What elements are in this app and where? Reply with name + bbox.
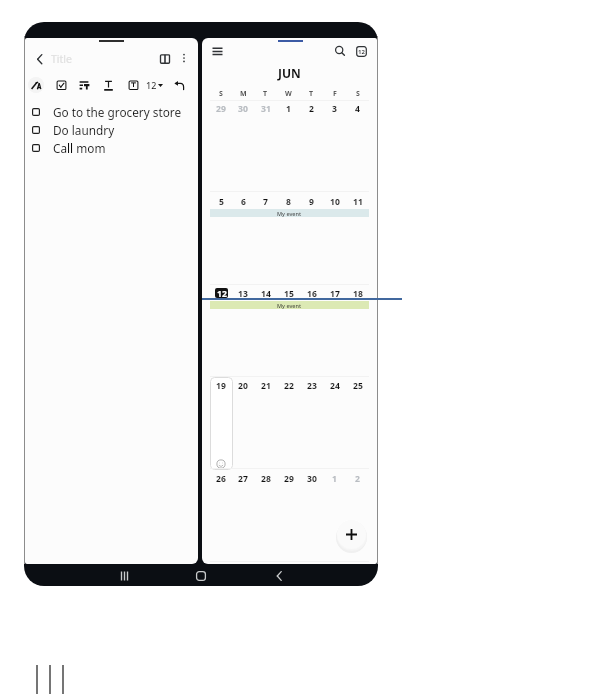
- button[interactable]: 12: [210, 288, 232, 298]
- staticText: JUN: [278, 65, 301, 81]
- button[interactable]: 15: [277, 288, 300, 298]
- button[interactable]: Recents: [115, 567, 133, 585]
- staticText: 9: [309, 196, 314, 206]
- button[interactable]: Back: [31, 50, 47, 66]
- staticText: F: [333, 89, 337, 99]
- staticText: 13: [238, 288, 248, 298]
- button[interactable]: 10: [323, 196, 346, 206]
- staticText: Call mom: [53, 140, 106, 156]
- button[interactable]: 4: [346, 103, 369, 113]
- button[interactable]: Undo: [171, 77, 187, 93]
- staticText: 31: [261, 103, 271, 113]
- staticText: 1: [332, 473, 337, 483]
- staticText: 7: [263, 196, 268, 206]
- staticText: 1: [286, 103, 291, 113]
- staticText: 4: [355, 103, 360, 113]
- staticText: M: [240, 89, 247, 99]
- staticText: 21: [261, 380, 271, 390]
- button[interactable]: 28: [254, 473, 277, 483]
- staticText: Go to the grocery store: [53, 104, 182, 120]
- button[interactable]: 7: [254, 196, 277, 206]
- staticText: 29: [216, 103, 226, 113]
- button[interactable]: Checklist: [53, 77, 69, 93]
- staticText: 30: [238, 103, 248, 113]
- button[interactable]: 6: [232, 196, 254, 206]
- button[interactable]: Menu: [209, 43, 225, 59]
- staticText: 23: [307, 380, 317, 390]
- button[interactable]: Home: [192, 567, 210, 585]
- button[interactable]: 14: [254, 288, 277, 298]
- button[interactable]: 26: [210, 473, 232, 483]
- button[interactable]: 19: [210, 380, 232, 390]
- staticText: 22: [284, 380, 294, 390]
- button[interactable]: 2: [300, 103, 323, 113]
- button[interactable]: 11: [346, 196, 369, 206]
- button[interactable]: 25: [346, 380, 369, 390]
- staticText: 14: [261, 288, 271, 298]
- staticText: T: [309, 89, 314, 99]
- button[interactable]: 1: [277, 103, 300, 113]
- button[interactable]: 20: [232, 380, 254, 390]
- staticText: 12: [217, 288, 227, 298]
- button[interactable]: 12: [146, 79, 163, 91]
- staticText: 25: [353, 380, 363, 390]
- staticText: 19: [216, 380, 226, 390]
- staticText: 2: [355, 473, 360, 483]
- button[interactable]: Insert: [125, 77, 141, 93]
- button[interactable]: Do laundry: [32, 121, 197, 139]
- button[interactable]: Go to the grocery store: [32, 103, 197, 121]
- button[interactable]: 13: [232, 288, 254, 298]
- staticText: 28: [261, 473, 271, 483]
- button[interactable]: 22: [277, 380, 300, 390]
- button[interactable]: Text style: [100, 77, 116, 93]
- button[interactable]: 17: [323, 288, 346, 298]
- staticText: 11: [353, 196, 363, 206]
- button[interactable]: 16: [300, 288, 323, 298]
- staticText: 6: [241, 196, 246, 206]
- staticText: 3: [332, 103, 337, 113]
- staticText: My event: [277, 302, 302, 309]
- button[interactable]: 27: [232, 473, 254, 483]
- staticText: 12: [358, 48, 365, 56]
- button[interactable]: 30: [300, 473, 323, 483]
- button[interactable]: 5: [210, 196, 232, 206]
- staticText: 20: [238, 380, 248, 390]
- button[interactable]: 2: [346, 473, 369, 483]
- button[interactable]: 31: [254, 103, 277, 113]
- staticText: 26: [216, 473, 226, 483]
- button[interactable]: Call mom: [32, 139, 197, 157]
- button[interactable]: 29: [277, 473, 300, 483]
- button[interactable]: 9: [300, 196, 323, 206]
- button[interactable]: More options: [177, 50, 191, 64]
- button[interactable]: Today: [353, 43, 369, 59]
- button[interactable]: 8: [277, 196, 300, 206]
- button[interactable]: Align: [76, 77, 92, 93]
- staticText: 2: [309, 103, 314, 113]
- button[interactable]: Add event: [337, 520, 366, 549]
- button[interactable]: 3: [323, 103, 346, 113]
- staticText: 30: [307, 473, 317, 483]
- button[interactable]: View mode: [157, 50, 173, 66]
- staticText: My event: [277, 210, 302, 217]
- staticText: 12: [146, 79, 157, 91]
- button[interactable]: Search: [332, 43, 348, 59]
- button[interactable]: Pen: [28, 77, 44, 93]
- button[interactable]: 30: [232, 103, 254, 113]
- button[interactable]: 23: [300, 380, 323, 390]
- staticText: 8: [286, 196, 291, 206]
- staticText: S: [219, 89, 223, 99]
- staticText: W: [285, 89, 292, 99]
- staticText: Do laundry: [53, 122, 115, 138]
- staticText: 15: [284, 288, 294, 298]
- button[interactable]: 29: [210, 103, 232, 113]
- staticText: 18: [353, 288, 363, 298]
- staticText: 10: [330, 196, 340, 206]
- button[interactable]: 24: [323, 380, 346, 390]
- button[interactable]: 1: [323, 473, 346, 483]
- button[interactable]: 21: [254, 380, 277, 390]
- button[interactable]: Back: [270, 567, 288, 585]
- button[interactable]: 18: [346, 288, 369, 298]
- staticText: 27: [238, 473, 248, 483]
- staticText: 24: [330, 380, 340, 390]
- staticText: 17: [330, 288, 340, 298]
